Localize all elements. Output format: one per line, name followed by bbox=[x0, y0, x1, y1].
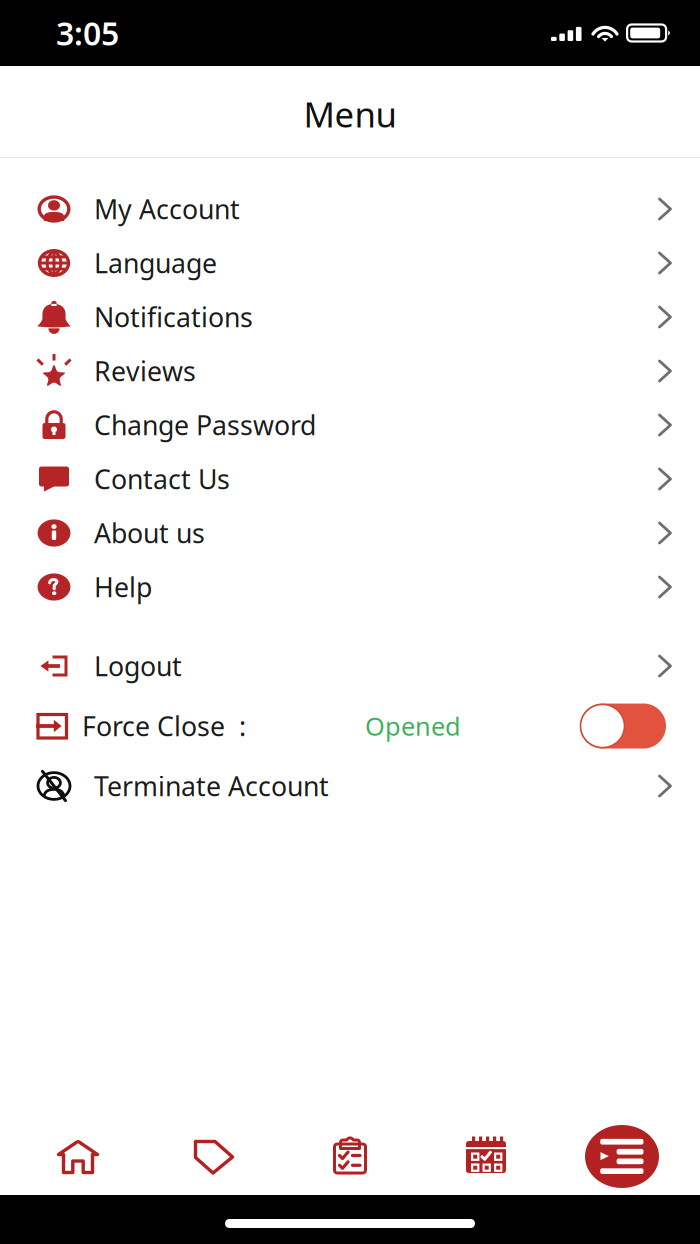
button[interactable]: Logout bbox=[0, 636, 700, 696]
button[interactable]: Notifications bbox=[0, 290, 700, 344]
staticText: Terminate Account bbox=[94, 768, 329, 804]
staticText: Language bbox=[94, 245, 217, 281]
staticText: Force Close : bbox=[82, 708, 246, 744]
button[interactable]: Reviews bbox=[0, 344, 700, 398]
button[interactable]: Home bbox=[10, 1118, 146, 1195]
staticText: Logout bbox=[94, 648, 182, 684]
button[interactable]: Orders bbox=[282, 1118, 418, 1195]
button[interactable]: Language bbox=[0, 236, 700, 290]
button[interactable]: Help bbox=[0, 560, 700, 614]
staticText: Reviews bbox=[94, 353, 196, 389]
button[interactable]: Change Password bbox=[0, 398, 700, 452]
button[interactable]: My Account bbox=[0, 182, 700, 236]
staticText: About us bbox=[94, 515, 205, 551]
staticText: Contact Us bbox=[94, 461, 230, 497]
button[interactable]: Contact Us bbox=[0, 452, 700, 506]
staticText: 3:05 bbox=[56, 12, 119, 54]
button[interactable]: Menu bbox=[554, 1118, 690, 1195]
staticText: Notifications bbox=[94, 299, 253, 335]
staticText: My Account bbox=[94, 191, 240, 227]
staticText: Help bbox=[94, 569, 152, 605]
staticText: Opened bbox=[365, 709, 461, 743]
button[interactable]: About us bbox=[0, 506, 700, 560]
button[interactable]: Offers bbox=[146, 1118, 282, 1195]
staticText: Change Password bbox=[94, 407, 316, 443]
button[interactable]: Terminate Account bbox=[0, 756, 700, 816]
button[interactable]: Force Close : bbox=[0, 696, 700, 756]
staticText: Menu bbox=[303, 91, 396, 137]
button[interactable]: Bookings bbox=[418, 1118, 554, 1195]
